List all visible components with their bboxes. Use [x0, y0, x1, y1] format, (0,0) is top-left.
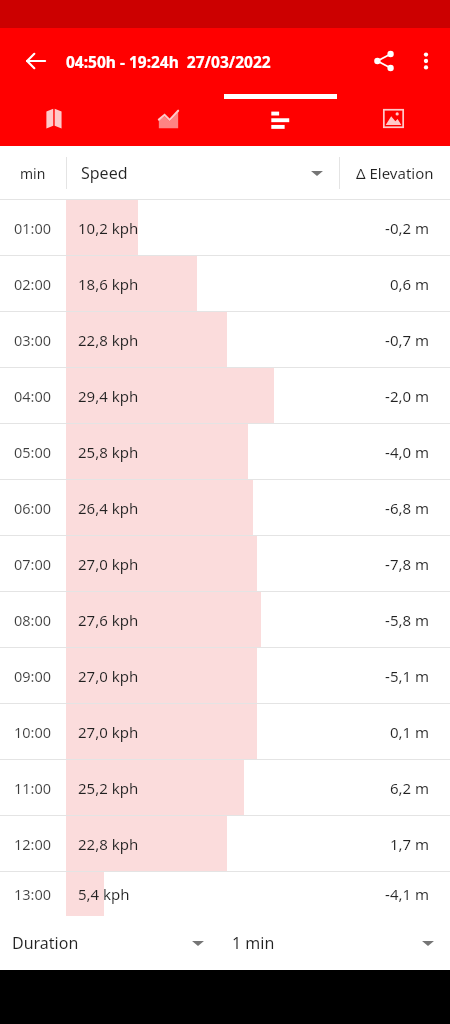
staticText: 0,6 m	[389, 274, 429, 294]
staticText: 09:00	[14, 666, 52, 686]
staticText: 05:00	[14, 442, 52, 462]
button[interactable]: 08:00	[0, 592, 450, 648]
staticText: 25,8 kph	[78, 442, 139, 462]
button[interactable]: 11:00	[0, 760, 450, 816]
button[interactable]: Share	[362, 39, 406, 83]
staticText: 10:00	[14, 722, 52, 742]
staticText: 13:00	[14, 884, 52, 904]
staticText: -7,8 m	[385, 554, 429, 574]
button[interactable]: Speed	[67, 146, 339, 200]
staticText: 07:00	[14, 554, 52, 574]
button[interactable]: 01:00	[0, 200, 450, 256]
button[interactable]: Duration	[0, 916, 225, 970]
staticText: -4,0 m	[385, 442, 429, 462]
staticText: min	[20, 164, 46, 183]
staticText: -0,7 m	[385, 330, 429, 350]
button[interactable]: 09:00	[0, 648, 450, 704]
staticText: 6,2 m	[389, 778, 429, 798]
staticText: -5,1 m	[385, 666, 429, 686]
staticText: 18,6 kph	[78, 274, 139, 294]
staticText: 22,8 kph	[78, 330, 139, 350]
staticText: -4,1 m	[385, 884, 429, 904]
button[interactable]: 02:00	[0, 256, 450, 312]
staticText: 1,7 m	[389, 834, 429, 854]
staticText: 06:00	[14, 498, 52, 518]
staticText: 01:00	[14, 218, 52, 238]
staticText: 04:50h - 19:24h 27/03/2022	[66, 51, 271, 72]
staticText: 12:00	[14, 834, 52, 854]
staticText: Δ Elevation	[356, 163, 434, 183]
staticText: 10,2 kph	[78, 218, 139, 238]
staticText: 0,1 m	[389, 722, 429, 742]
staticText: -2,0 m	[385, 386, 429, 406]
button[interactable]: 10:00	[0, 704, 450, 760]
staticText: 25,2 kph	[78, 778, 139, 798]
button[interactable]: Δ Elevation	[340, 146, 450, 200]
staticText: 02:00	[14, 274, 52, 294]
button[interactable]: 04:00	[0, 368, 450, 424]
staticText: 27,0 kph	[78, 722, 139, 742]
button[interactable]: Table	[224, 94, 337, 146]
staticText: 22,8 kph	[78, 834, 139, 854]
button[interactable]: 05:00	[0, 424, 450, 480]
staticText: -0,2 m	[385, 218, 429, 238]
staticText: -6,8 m	[385, 498, 429, 518]
button[interactable]: 07:00	[0, 536, 450, 592]
button[interactable]: 03:00	[0, 312, 450, 368]
staticText: 27,0 kph	[78, 554, 139, 574]
staticText: Duration	[12, 932, 79, 954]
staticText: 1 min	[232, 932, 275, 954]
staticText: 11:00	[14, 778, 52, 798]
button[interactable]: 06:00	[0, 480, 450, 536]
button[interactable]: 13:00	[0, 872, 450, 916]
button[interactable]: Back	[14, 39, 58, 83]
staticText: 08:00	[14, 610, 52, 630]
button[interactable]: 12:00	[0, 816, 450, 872]
button[interactable]: 1 min	[225, 916, 450, 970]
staticText: -5,8 m	[385, 610, 429, 630]
button[interactable]: Chart	[112, 94, 224, 146]
staticText: 04:00	[14, 386, 52, 406]
button[interactable]: Map	[0, 94, 112, 146]
staticText: Speed	[81, 162, 128, 184]
staticText: 26,4 kph	[78, 498, 139, 518]
staticText: 5,4 kph	[78, 884, 130, 904]
button[interactable]: More options	[406, 39, 446, 83]
staticText: 03:00	[14, 330, 52, 350]
staticText: 27,6 kph	[78, 610, 139, 630]
button[interactable]: Photos	[337, 94, 450, 146]
staticText: 27,0 kph	[78, 666, 139, 686]
staticText: 29,4 kph	[78, 386, 139, 406]
